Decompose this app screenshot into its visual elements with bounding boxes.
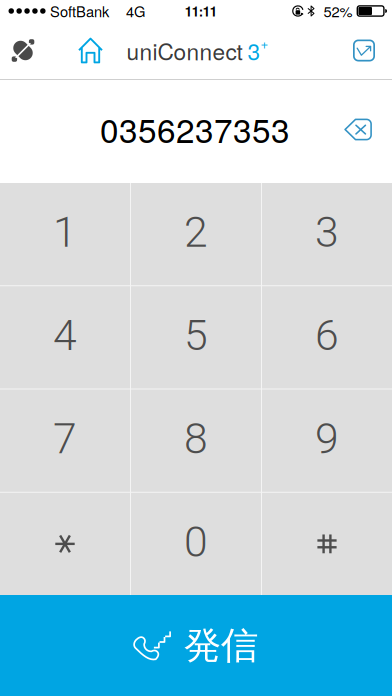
button[interactable] [0, 493, 130, 595]
button[interactable]: Connection [1, 28, 45, 72]
staticText: 5 [184, 310, 208, 360]
button[interactable]: 2 [131, 183, 261, 285]
staticText: 3 [315, 207, 339, 257]
staticText: 52% [324, 0, 353, 21]
button[interactable]: Delete [334, 106, 382, 152]
button[interactable]: 6 [262, 286, 392, 388]
button[interactable]: 9 [262, 389, 392, 492]
button[interactable]: Statistics [342, 28, 386, 72]
button[interactable]: 5 [131, 286, 261, 388]
staticText: SoftBank [50, 0, 109, 21]
staticText: 4G [126, 0, 145, 21]
staticText: + [260, 33, 268, 52]
staticText: 2 [184, 207, 208, 257]
staticText: 3 [247, 34, 260, 67]
button[interactable]: Home [75, 34, 105, 66]
staticText: 0356237353 [100, 105, 290, 152]
button[interactable]: 7 [0, 389, 130, 492]
staticText: 8 [184, 414, 208, 464]
staticText: 9 [315, 414, 339, 464]
button[interactable]: 発信 [0, 595, 392, 696]
staticText: 6 [315, 310, 339, 360]
staticText: 発信 [184, 622, 258, 669]
button[interactable]: 8 [131, 389, 261, 492]
button[interactable]: 1 [0, 183, 130, 285]
staticText: 7 [53, 414, 77, 464]
button[interactable] [262, 493, 392, 595]
button[interactable]: 3 [262, 183, 392, 285]
button[interactable]: 4 [0, 286, 130, 388]
staticText: uniConnect [126, 34, 242, 67]
button[interactable]: 0 [131, 493, 261, 595]
staticText: 11:11 [185, 1, 217, 21]
staticText: 1 [53, 207, 77, 257]
staticText: 4 [53, 310, 77, 360]
staticText: 0 [184, 517, 208, 567]
